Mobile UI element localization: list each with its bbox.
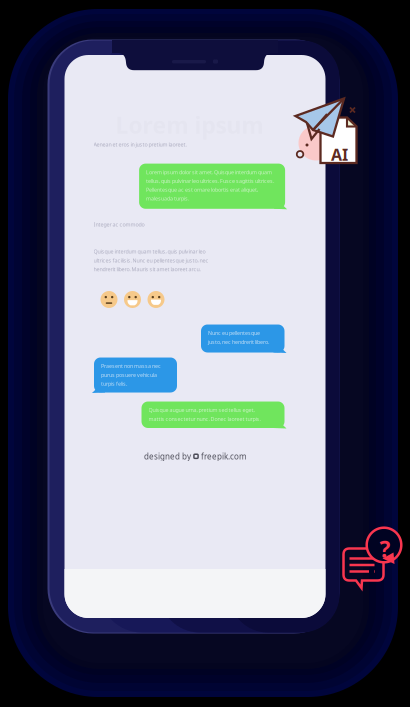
staticText: ? (379, 534, 390, 564)
staticText: Quisque augue urna, pretium sed tellus e… (148, 406, 260, 422)
staticText: Lorem ipsum dolor sit amet. Quisque inte… (146, 169, 274, 202)
button[interactable]: Lorem ipsum dolor sit amet. Quisque inte… (64, 55, 325, 618)
button[interactable]: Praesent non massa nec purus posuere veh… (64, 55, 325, 618)
staticText: Praesent non massa nec purus posuere veh… (101, 362, 161, 387)
staticText: Aenean et eros in justo pretium laoreet. (93, 141, 186, 148)
staticText: freepik.com (201, 451, 246, 462)
staticText: Quisque interdum quam tellus, quis pulvi… (93, 248, 208, 273)
staticText: AI (331, 144, 348, 165)
staticText: Integer ac commodo (93, 221, 144, 228)
button[interactable]: Quisque augue urna, pretium sed tellus e… (64, 55, 325, 618)
button[interactable]: Nunc eu pellentesque justo, nec hendreri… (64, 55, 325, 618)
staticText: designed by (144, 451, 191, 462)
button[interactable]: Help and FAQ (0, 0, 410, 707)
staticText: Nunc eu pellentesque justo, nec hendreri… (208, 329, 269, 345)
